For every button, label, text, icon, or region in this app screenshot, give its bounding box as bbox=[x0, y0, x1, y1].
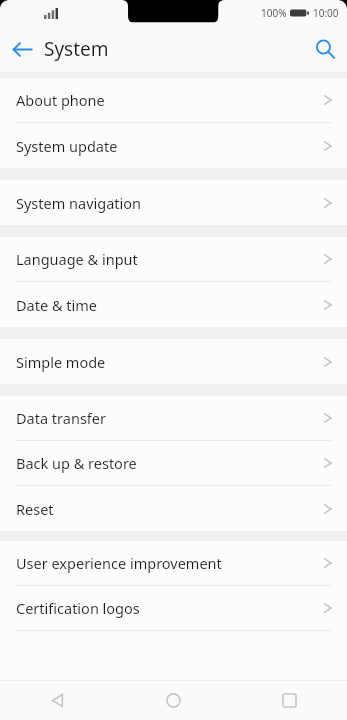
button[interactable]: Recent apps bbox=[231, 681, 347, 720]
staticText: Simple mode bbox=[16, 352, 323, 372]
button[interactable]: Search bbox=[303, 26, 347, 72]
button[interactable]: Date & time bbox=[0, 282, 347, 327]
staticText: Certification logos bbox=[16, 598, 323, 618]
staticText: 100% bbox=[261, 6, 287, 20]
button[interactable]: User experience improvement bbox=[0, 541, 347, 585]
button[interactable]: Back bbox=[0, 681, 115, 720]
staticText: System bbox=[44, 36, 303, 62]
staticText: 10:00 bbox=[313, 6, 339, 20]
staticText: System navigation bbox=[16, 193, 323, 213]
button[interactable]: Home bbox=[115, 681, 231, 720]
button[interactable]: System update bbox=[0, 123, 347, 168]
button[interactable]: Reset bbox=[0, 486, 347, 531]
button[interactable]: Language & input bbox=[0, 237, 347, 281]
staticText: Language & input bbox=[16, 249, 323, 269]
staticText: Data transfer bbox=[16, 408, 323, 428]
button[interactable]: Data transfer bbox=[0, 396, 347, 440]
staticText: System update bbox=[16, 136, 323, 156]
staticText: Reset bbox=[16, 499, 323, 519]
button[interactable]: System navigation bbox=[0, 180, 347, 225]
button[interactable]: Back bbox=[0, 26, 44, 72]
staticText: Date & time bbox=[16, 295, 323, 315]
staticText: User experience improvement bbox=[16, 553, 323, 573]
button[interactable]: Back up & restore bbox=[0, 441, 347, 485]
button[interactable]: Certification logos bbox=[0, 586, 347, 630]
button[interactable]: Simple mode bbox=[0, 339, 347, 384]
staticText: Back up & restore bbox=[16, 453, 323, 473]
staticText: About phone bbox=[16, 90, 323, 110]
button[interactable]: About phone bbox=[0, 78, 347, 122]
